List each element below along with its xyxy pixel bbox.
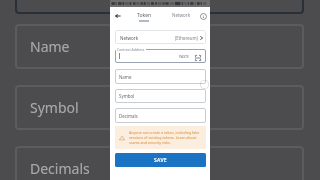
staticText: PASTE [179,54,189,59]
button[interactable]: Decimals [115,108,206,123]
staticText: Symbol [30,98,79,117]
staticText: Network [172,12,191,18]
button[interactable]: Name [115,69,206,84]
staticText: Decimals [119,113,138,119]
button[interactable]: Symbol [115,89,206,103]
staticText: Name [30,37,70,56]
staticText: SAVE [154,157,167,164]
button[interactable]: Network [163,7,200,23]
staticText: Token [137,12,152,19]
button[interactable]: Info [196,8,210,24]
button[interactable]: Back [111,8,124,24]
staticText: Network [120,35,139,41]
other: Scan QR code [195,55,201,61]
button[interactable]: SAVE [115,153,206,167]
staticText: Anyone can create a token, including fak… [129,130,202,145]
button[interactable]: Token [126,7,163,23]
staticText: Symbol [119,93,135,99]
staticText: Name [119,74,132,80]
button[interactable]: PASTE [115,49,206,63]
staticText: Contract Address [117,47,145,52]
staticText: (Ethereum) [175,35,198,41]
button[interactable]: Network [115,30,206,44]
staticText: Decimals [30,159,90,178]
